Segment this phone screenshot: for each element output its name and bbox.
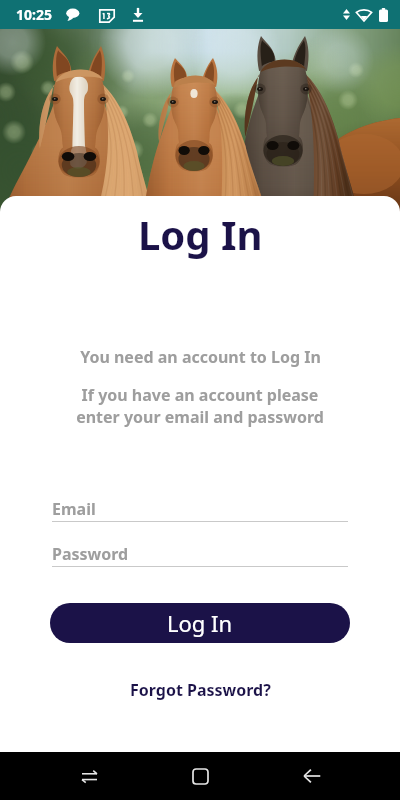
button[interactable]: Forgot Password?	[122, 676, 279, 704]
staticText: Log In	[138, 207, 263, 261]
button[interactable]: Email	[52, 498, 348, 522]
staticText: Email	[52, 498, 96, 520]
staticText: Forgot Password?	[130, 679, 271, 701]
staticText: Password	[52, 543, 129, 565]
button[interactable]: Recent apps	[66, 753, 112, 799]
button[interactable]: Back	[289, 753, 335, 799]
staticText: If you have an account please enter your…	[76, 384, 324, 428]
staticText: Log In	[167, 608, 233, 638]
button[interactable]: Password	[52, 543, 348, 567]
staticText: 10:25	[16, 5, 52, 24]
button[interactable]: Home	[177, 753, 223, 799]
button[interactable]: Log In	[50, 603, 350, 643]
staticText: You need an account to Log In	[80, 346, 321, 368]
